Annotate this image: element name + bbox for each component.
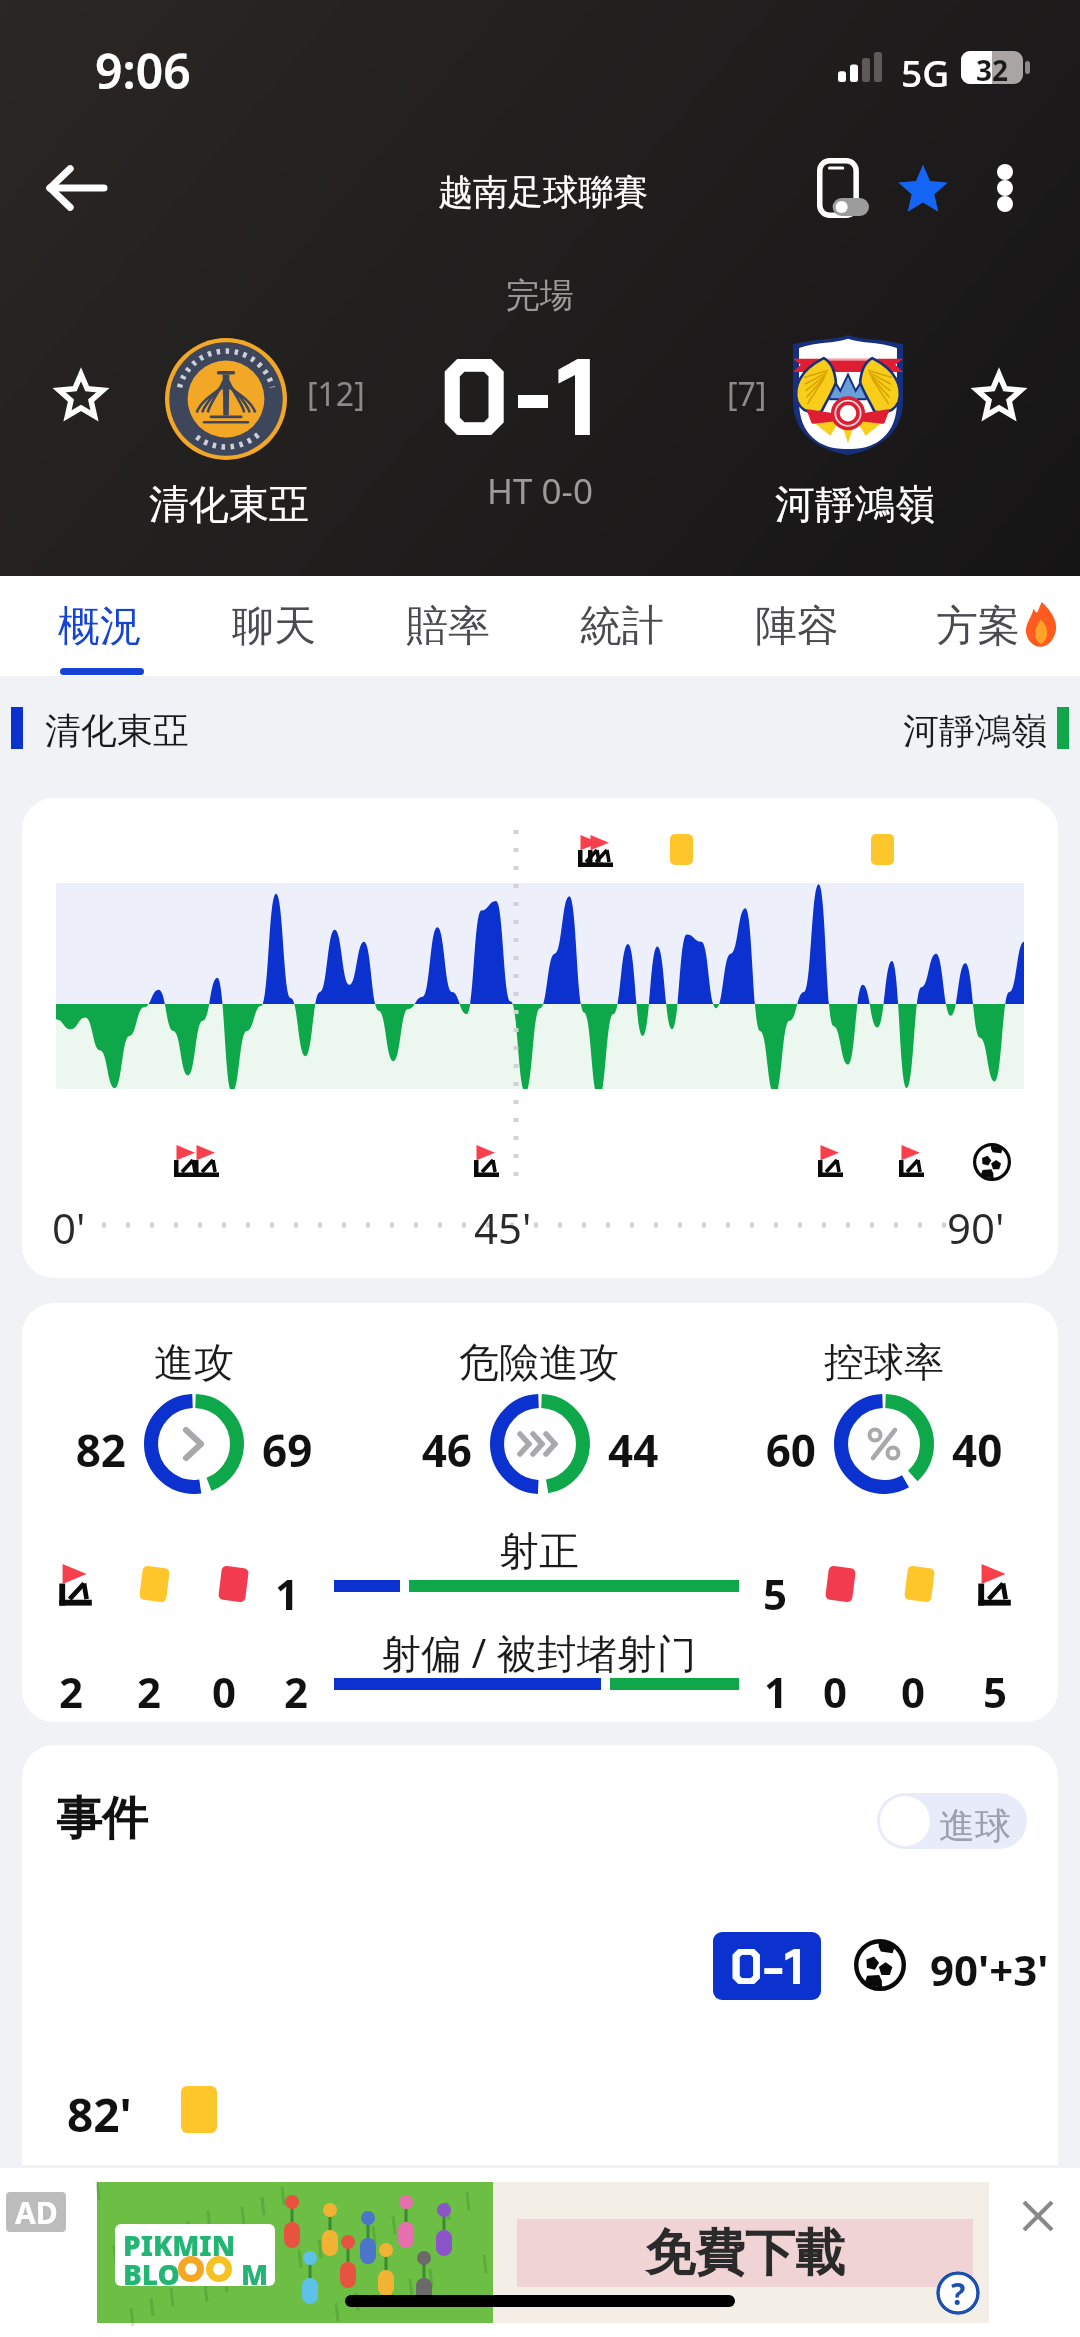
- button[interactable]: 陣容: [711, 576, 883, 676]
- staticText: 賠率: [406, 600, 490, 653]
- staticText: 2: [22, 1663, 349, 1720]
- staticText: 進球: [939, 1803, 1011, 1848]
- staticText: 5G: [901, 47, 950, 97]
- staticText: 清化東亞: [45, 708, 189, 753]
- button[interactable]: Favorite: [884, 144, 962, 232]
- staticText: 0: [635, 1663, 1035, 1720]
- button[interactable]: 統計: [536, 576, 708, 676]
- staticText: 統計: [580, 600, 664, 653]
- staticText: 90': [947, 1199, 1005, 1256]
- button[interactable]: More options: [962, 144, 1048, 232]
- staticText: 1: [556, 328, 598, 468]
- staticText: 進攻: [22, 1337, 394, 1387]
- staticText: 完場: [0, 274, 1080, 317]
- button[interactable]: Follow home team: [50, 364, 112, 426]
- staticText: [7]: [727, 372, 767, 416]
- staticText: 0': [52, 1199, 86, 1256]
- staticText: 危險進攻: [339, 1337, 739, 1387]
- staticText: 射偏 / 被封堵射门: [339, 1625, 739, 1680]
- staticText: 90'+3': [930, 1941, 1049, 1998]
- staticText: 河靜鴻嶺: [775, 479, 935, 529]
- staticText: 越南足球聯賽: [438, 170, 648, 214]
- staticText: HT 0-0: [0, 467, 1080, 515]
- staticText: 44: [608, 1420, 718, 1480]
- staticText: 45': [474, 1199, 532, 1256]
- staticText: 0: [439, 328, 510, 468]
- staticText: 5: [575, 1565, 975, 1622]
- button[interactable]: 概況: [14, 576, 186, 676]
- staticText: 免費下載: [645, 2222, 845, 2285]
- button[interactable]: Follow away team: [968, 364, 1030, 426]
- staticText: 清化東亞: [149, 479, 309, 529]
- staticText: 射正: [339, 1526, 739, 1576]
- staticText: 聊天: [232, 600, 316, 653]
- button[interactable]: Ad info: [936, 2271, 980, 2315]
- staticText: 河靜鴻嶺: [903, 708, 1047, 753]
- staticText: PIKMIN: [123, 2226, 236, 2264]
- staticText: 陣容: [755, 600, 839, 653]
- staticText: 40: [952, 1420, 1058, 1480]
- staticText: 5: [795, 1663, 1058, 1720]
- staticText: 概況: [58, 600, 142, 653]
- staticText: 82: [22, 1420, 126, 1480]
- button[interactable]: 聊天: [188, 576, 360, 676]
- button[interactable]: 進球: [877, 1793, 1027, 1849]
- button[interactable]: PIKMIN: [97, 2182, 989, 2323]
- staticText: M: [241, 2255, 269, 2286]
- button[interactable]: Close ad: [1016, 2194, 1060, 2238]
- staticText: 69: [262, 1420, 372, 1480]
- staticText: 1: [576, 1663, 976, 1720]
- staticText: 32: [976, 51, 1009, 84]
- staticText: 0-1: [730, 1934, 804, 1999]
- staticText: 2: [22, 1663, 271, 1720]
- staticText: 2: [96, 1663, 496, 1720]
- button[interactable]: Notification settings: [800, 144, 886, 232]
- staticText: 1: [87, 1565, 487, 1622]
- staticText: [12]: [307, 372, 365, 416]
- button[interactable]: 方案: [892, 576, 1064, 676]
- staticText: 事件: [56, 1790, 148, 1848]
- staticText: 0: [24, 1663, 424, 1720]
- button[interactable]: 賠率: [362, 576, 534, 676]
- staticText: 82': [67, 2083, 132, 2146]
- staticText: 控球率: [684, 1337, 1058, 1387]
- staticText: ?: [951, 2273, 966, 2314]
- staticText: BLO: [123, 2255, 180, 2286]
- button[interactable]: Back: [28, 144, 124, 232]
- staticText: 方案: [936, 600, 1020, 653]
- staticText: 0: [713, 1663, 1058, 1720]
- staticText: AD: [15, 2192, 58, 2232]
- staticText: 9:06: [95, 38, 191, 103]
- staticText: 46: [362, 1420, 472, 1480]
- staticText: 60: [706, 1420, 816, 1480]
